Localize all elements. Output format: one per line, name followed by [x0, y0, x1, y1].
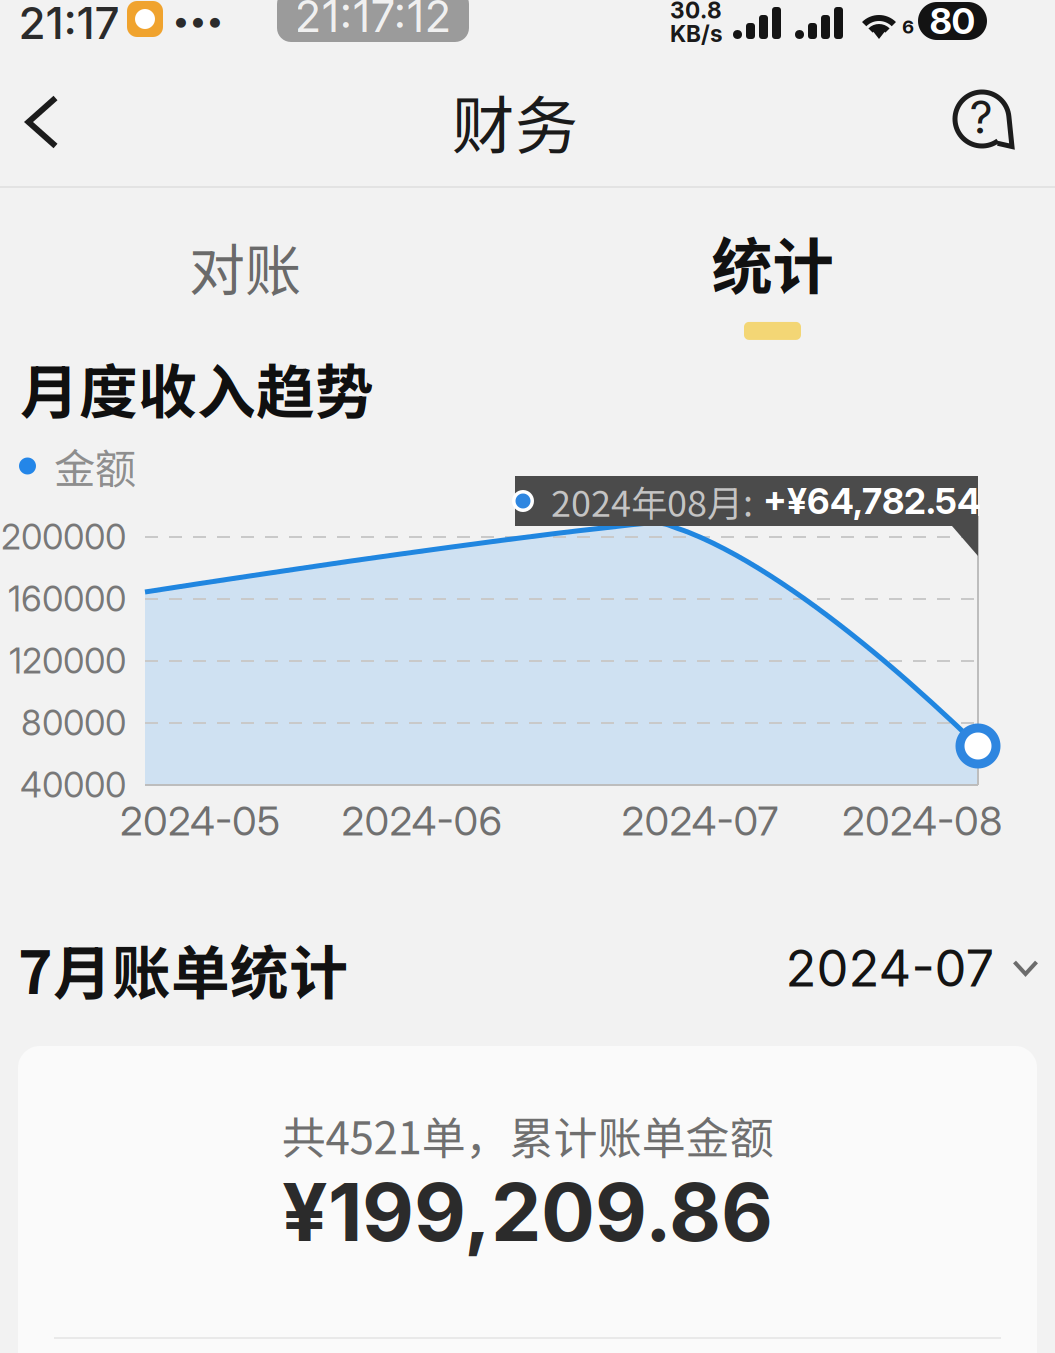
staticText: 120000: [9, 640, 126, 682]
staticText: 2024-08: [842, 797, 1002, 845]
staticText: 统计: [711, 218, 833, 307]
staticText: 2024-07: [621, 797, 778, 845]
button[interactable]: Help: [0, 0, 1055, 1353]
staticText: +¥64,782.54: [763, 479, 981, 523]
staticText: 6: [902, 15, 914, 38]
staticText: 40000: [20, 764, 126, 806]
button[interactable]: Back: [0, 0, 1055, 1353]
staticText: 财务: [452, 76, 578, 166]
staticText: 80000: [21, 702, 126, 744]
staticText: ?: [969, 90, 992, 144]
staticText: 21:17: [18, 0, 119, 50]
staticText: 200000: [1, 516, 126, 558]
staticText: 30.8: [670, 0, 722, 24]
staticText: 2024-06: [341, 797, 502, 845]
staticText: 160000: [8, 578, 126, 620]
button[interactable]: 2024-07: [0, 0, 1055, 1353]
staticText: ¥199,209.86: [282, 1164, 773, 1260]
staticText: 7月账单统计: [18, 926, 348, 1011]
staticText: 2024-07: [785, 937, 994, 999]
staticText: 月度收入趋势: [20, 345, 374, 430]
staticText: 对账: [189, 226, 301, 307]
button[interactable]: 对账: [0, 188, 490, 336]
staticText: 金额: [54, 436, 136, 496]
staticText: 80: [929, 0, 975, 43]
staticText: 2024-05: [120, 797, 280, 845]
staticText: KB/s: [670, 20, 723, 47]
staticText: 21:17:12: [294, 0, 451, 43]
staticText: 2024年08月:: [551, 475, 753, 527]
staticText: 共4521单，累计账单金额: [281, 1103, 773, 1167]
button[interactable]: 统计: [490, 188, 1055, 336]
staticText: •••: [172, 1, 223, 39]
